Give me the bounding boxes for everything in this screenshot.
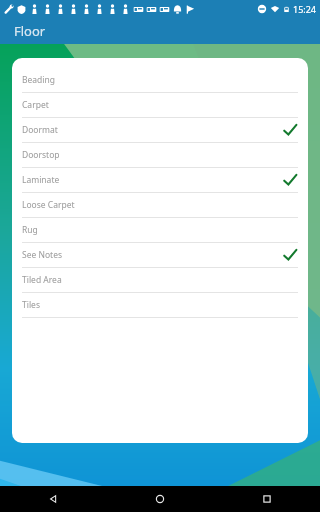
button[interactable]: Doormat [12,118,308,142]
button[interactable]: Back [0,486,106,512]
staticText: Carpet [22,99,49,111]
staticText: Doorstop [22,149,60,161]
staticText: Tiles [22,299,40,311]
button[interactable]: Carpet [12,93,308,117]
staticText: Tiled Area [22,274,62,286]
staticText: Rug [22,224,38,236]
button[interactable]: Home [106,486,213,512]
staticText: Laminate [22,174,60,186]
staticText: Doormat [22,124,58,136]
staticText: See Notes [22,249,63,261]
staticText: Beading [22,74,55,86]
button[interactable]: Loose Carpet [12,193,308,217]
button[interactable]: See Notes [12,243,308,267]
button[interactable]: Laminate [12,168,308,192]
button[interactable]: Recents [213,486,320,512]
staticText: Loose Carpet [22,199,75,211]
button[interactable]: Tiled Area [12,268,308,292]
button[interactable]: Tiles [12,293,308,317]
staticText: 15:24 [293,3,317,15]
staticText: Floor [14,22,46,40]
button[interactable]: Beading [12,68,308,92]
button[interactable]: Doorstop [12,143,308,167]
button[interactable]: Rug [12,218,308,242]
